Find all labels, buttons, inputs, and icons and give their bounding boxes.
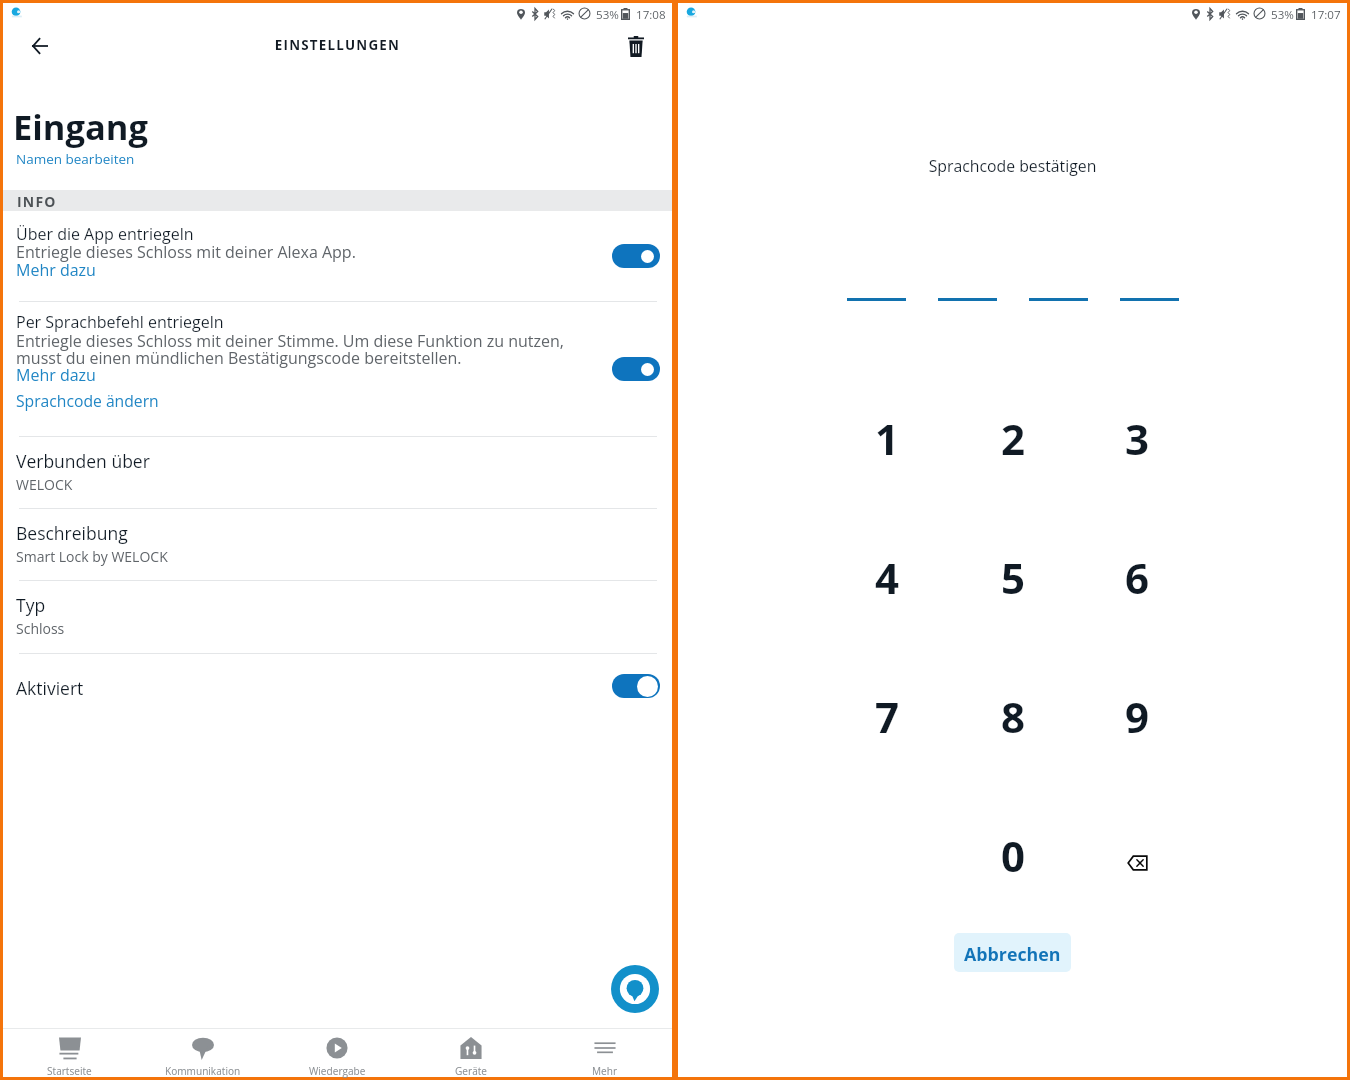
button[interactable]: 3 bbox=[1095, 403, 1179, 473]
staticText: INFO bbox=[17, 192, 57, 211]
staticText: Kommunikation bbox=[165, 1064, 241, 1078]
button[interactable]: Zurück bbox=[18, 24, 62, 68]
button[interactable]: 8 bbox=[971, 681, 1055, 751]
staticText: Smart Lock by WELOCK bbox=[16, 547, 168, 566]
staticText: 53% bbox=[1271, 7, 1294, 23]
staticText: WELOCK bbox=[16, 475, 73, 494]
staticText: 17:08 bbox=[636, 7, 666, 23]
staticText: Sprachcode ändern bbox=[16, 390, 159, 411]
staticText: Mehr dazu bbox=[16, 364, 96, 386]
button[interactable]: Abbrechen bbox=[954, 933, 1071, 972]
staticText: 9 bbox=[1125, 688, 1150, 745]
button[interactable]: Schalter bbox=[612, 357, 660, 381]
button[interactable]: Aktiviert bbox=[3, 653, 672, 713]
staticText: Mehr dazu bbox=[16, 259, 96, 281]
button[interactable]: 4 bbox=[845, 542, 929, 612]
button[interactable]: Per Sprachbefehl entriegeln bbox=[3, 305, 672, 430]
staticText: 53% bbox=[596, 7, 619, 23]
staticText: Geräte bbox=[455, 1064, 488, 1078]
staticText: Per Sprachbefehl entriegeln bbox=[16, 311, 224, 333]
button[interactable]: Geräte bbox=[404, 1028, 538, 1077]
staticText: Typ bbox=[16, 593, 46, 617]
staticText: Schloss bbox=[16, 619, 65, 638]
staticText: Sprachcode bestätigen bbox=[678, 155, 1347, 177]
staticText: 7 bbox=[875, 688, 900, 745]
staticText: EINSTELLUNGEN bbox=[3, 36, 672, 54]
staticText: Beschreibung bbox=[16, 521, 128, 545]
staticText: 6 bbox=[1125, 549, 1150, 606]
staticText: 1 bbox=[875, 410, 900, 467]
staticText: 0 bbox=[1001, 827, 1026, 884]
staticText: Eingang bbox=[13, 103, 149, 150]
staticText: Namen bearbeiten bbox=[16, 150, 135, 168]
staticText: 8 bbox=[1001, 688, 1026, 745]
staticText: Mehr bbox=[592, 1064, 618, 1078]
button[interactable]: 5 bbox=[971, 542, 1055, 612]
button[interactable]: Über die App entriegeln bbox=[3, 215, 672, 304]
button[interactable]: Schalter bbox=[612, 674, 660, 698]
staticText: 2 bbox=[1001, 410, 1026, 467]
button[interactable]: 2 bbox=[971, 403, 1055, 473]
staticText: Entriegle dieses Schloss mit deiner Stim… bbox=[16, 330, 564, 369]
button[interactable]: Verbunden über bbox=[3, 436, 672, 507]
staticText: 4 bbox=[875, 549, 900, 606]
staticText: 5 bbox=[1001, 549, 1026, 606]
button[interactable]: Beschreibung bbox=[3, 508, 672, 579]
button[interactable]: Alexa bbox=[611, 965, 659, 1013]
staticText: Abbrechen bbox=[964, 942, 1061, 966]
button[interactable]: Namen bearbeiten bbox=[16, 150, 135, 168]
button[interactable]: 0 bbox=[971, 820, 1055, 890]
button[interactable]: 6 bbox=[1095, 542, 1179, 612]
staticText: Aktiviert bbox=[16, 676, 84, 700]
button[interactable]: Löschen bbox=[1095, 828, 1179, 898]
button[interactable]: Kommunikation bbox=[136, 1028, 270, 1077]
staticText: Entriegle dieses Schloss mit deiner Alex… bbox=[16, 241, 356, 263]
button[interactable]: 9 bbox=[1095, 681, 1179, 751]
staticText: Verbunden über bbox=[16, 449, 150, 473]
staticText: Wiedergabe bbox=[309, 1064, 366, 1078]
button[interactable]: Startseite bbox=[3, 1028, 136, 1077]
button[interactable]: Mehr bbox=[538, 1028, 672, 1077]
button[interactable]: Löschen bbox=[614, 24, 658, 68]
staticText: Über die App entriegeln bbox=[16, 223, 194, 245]
button[interactable]: Wiedergabe bbox=[270, 1028, 404, 1077]
staticText: 3 bbox=[1125, 410, 1150, 467]
button[interactable]: Schalter bbox=[612, 244, 660, 268]
staticText: Startseite bbox=[47, 1064, 92, 1078]
button[interactable]: 7 bbox=[845, 681, 929, 751]
button[interactable]: Typ bbox=[3, 580, 672, 651]
staticText: 17:07 bbox=[1311, 7, 1341, 23]
button[interactable]: 1 bbox=[845, 403, 929, 473]
